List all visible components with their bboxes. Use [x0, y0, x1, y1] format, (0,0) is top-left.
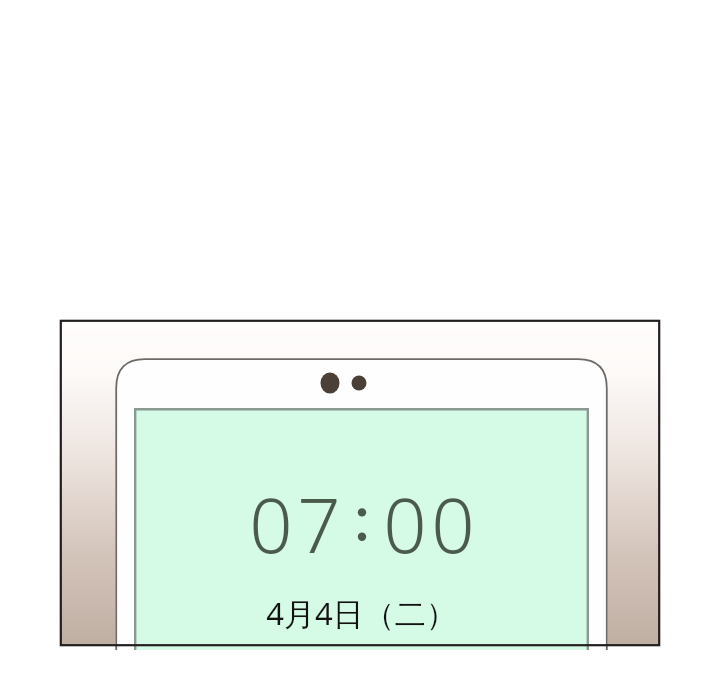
staticText: 0: [383, 472, 427, 576]
button[interactable]: 4月4日（二）: [266, 592, 457, 634]
staticText: 7: [297, 472, 341, 576]
button[interactable]: 0: [249, 472, 475, 576]
staticText: 0: [249, 472, 293, 576]
button[interactable]: 0: [134, 408, 589, 650]
staticText: 0: [431, 472, 475, 576]
